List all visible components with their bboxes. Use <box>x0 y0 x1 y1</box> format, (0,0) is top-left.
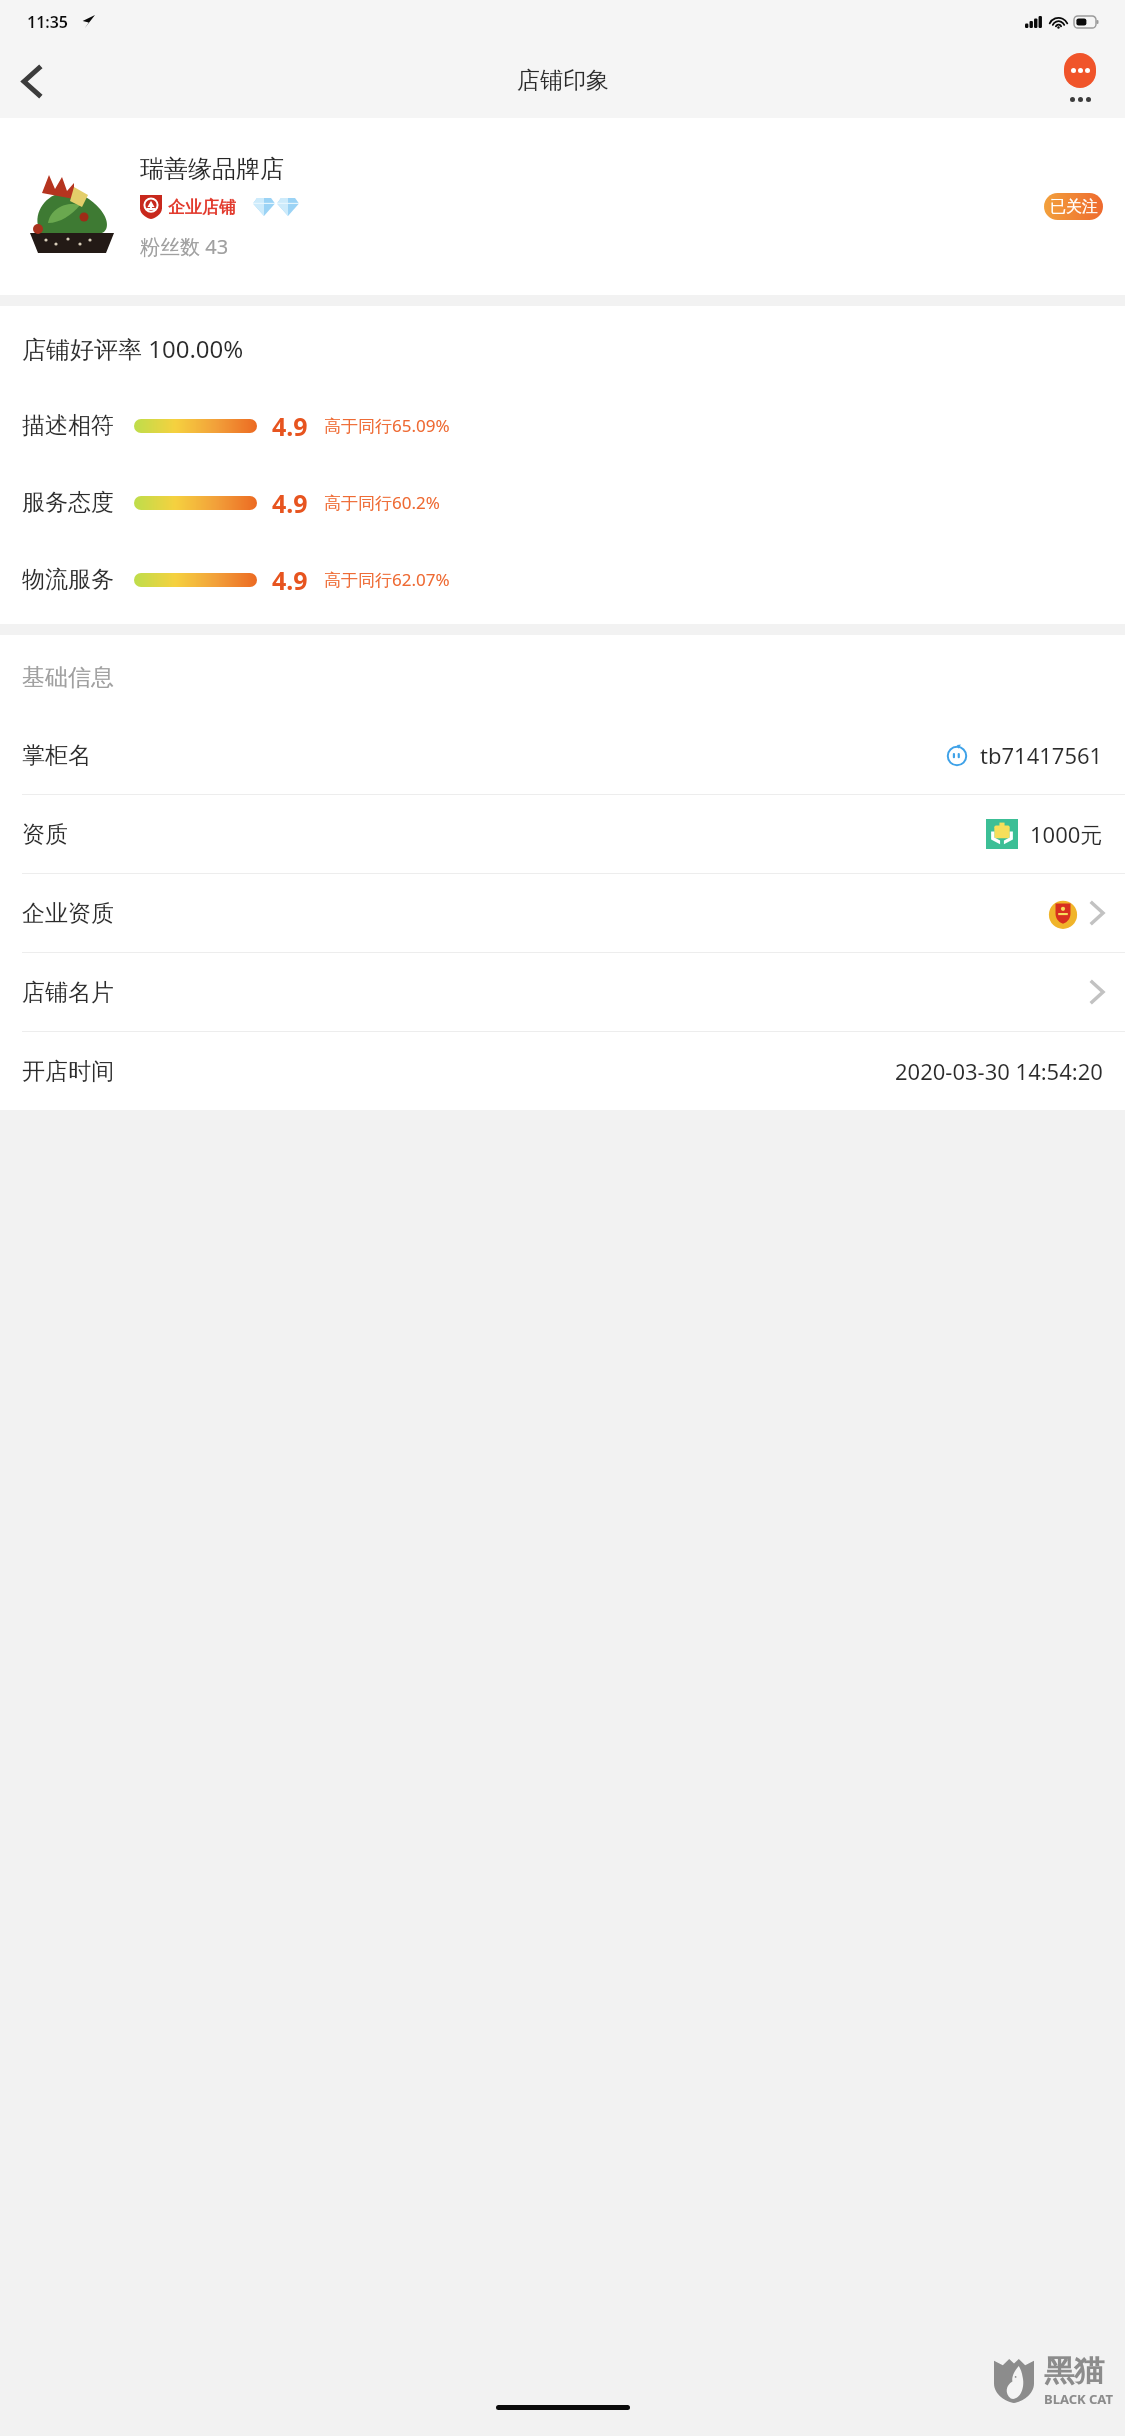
staticText: 企业资质 <box>22 899 114 928</box>
staticText: 店铺名片 <box>22 978 114 1007</box>
staticText: 基础信息 <box>22 663 114 692</box>
staticText: 企业店铺 <box>168 197 236 218</box>
button[interactable]: More options <box>1049 50 1111 112</box>
staticText: 物流服务 <box>22 565 114 594</box>
staticText: 掌柜名 <box>22 741 91 770</box>
staticText: 店铺好评率 100.00% <box>22 332 244 365</box>
staticText: BLACK CAT <box>1044 2390 1113 2408</box>
staticText: 黑猫 <box>1044 2352 1104 2390</box>
button[interactable]: 掌柜名 <box>0 716 1125 795</box>
button[interactable]: Back <box>0 50 62 112</box>
staticText: 已关注 <box>1050 197 1098 217</box>
button[interactable]: 店铺名片 <box>0 953 1125 1032</box>
staticText: 描述相符 <box>22 411 114 440</box>
staticText: 4.9 <box>272 563 308 597</box>
button[interactable]: 已关注 <box>1044 193 1103 220</box>
staticText: 2020-03-30 14:54:20 <box>895 1056 1103 1086</box>
staticText: 粉丝数 43 <box>140 233 229 260</box>
staticText: 1000元 <box>1030 819 1103 849</box>
staticText: 11:35 <box>27 11 69 33</box>
button[interactable]: 开店时间 <box>0 1032 1125 1110</box>
staticText: 瑞善缘品牌店 <box>140 154 284 184</box>
staticText: 高于同行60.2% <box>324 491 440 514</box>
button[interactable]: 企业资质 <box>0 874 1125 953</box>
staticText: 4.9 <box>272 409 308 443</box>
staticText: 高于同行62.07% <box>324 568 450 591</box>
staticText: 4.9 <box>272 486 308 520</box>
staticText: 服务态度 <box>22 488 114 517</box>
staticText: 开店时间 <box>22 1057 114 1086</box>
staticText: 高于同行65.09% <box>324 414 450 437</box>
staticText: tb71417561 <box>980 740 1103 770</box>
staticText: 店铺印象 <box>517 66 609 95</box>
button[interactable]: 资质 <box>0 795 1125 874</box>
staticText: 资质 <box>22 820 68 849</box>
